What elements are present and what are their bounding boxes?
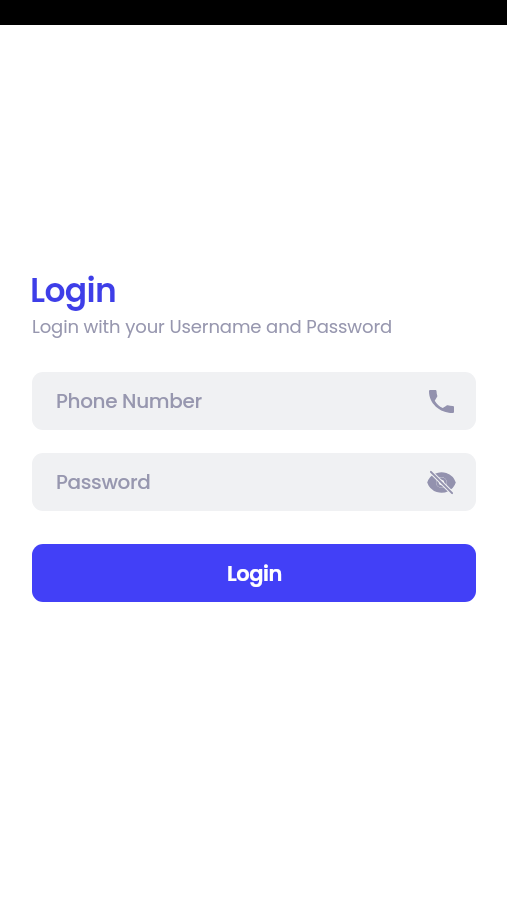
staticText: Login — [30, 267, 117, 313]
button[interactable]: Login — [32, 544, 476, 602]
staticText: Password — [56, 468, 425, 496]
staticText: Login — [227, 559, 282, 588]
button[interactable]: Phone Number — [32, 372, 476, 430]
staticText: Login with your Username and Password — [32, 314, 393, 339]
other: Show password — [427, 468, 456, 497]
other: Phone — [429, 390, 454, 413]
button[interactable]: Show password — [427, 468, 456, 497]
staticText: Phone Number — [56, 387, 429, 415]
button[interactable]: Password — [32, 453, 476, 511]
